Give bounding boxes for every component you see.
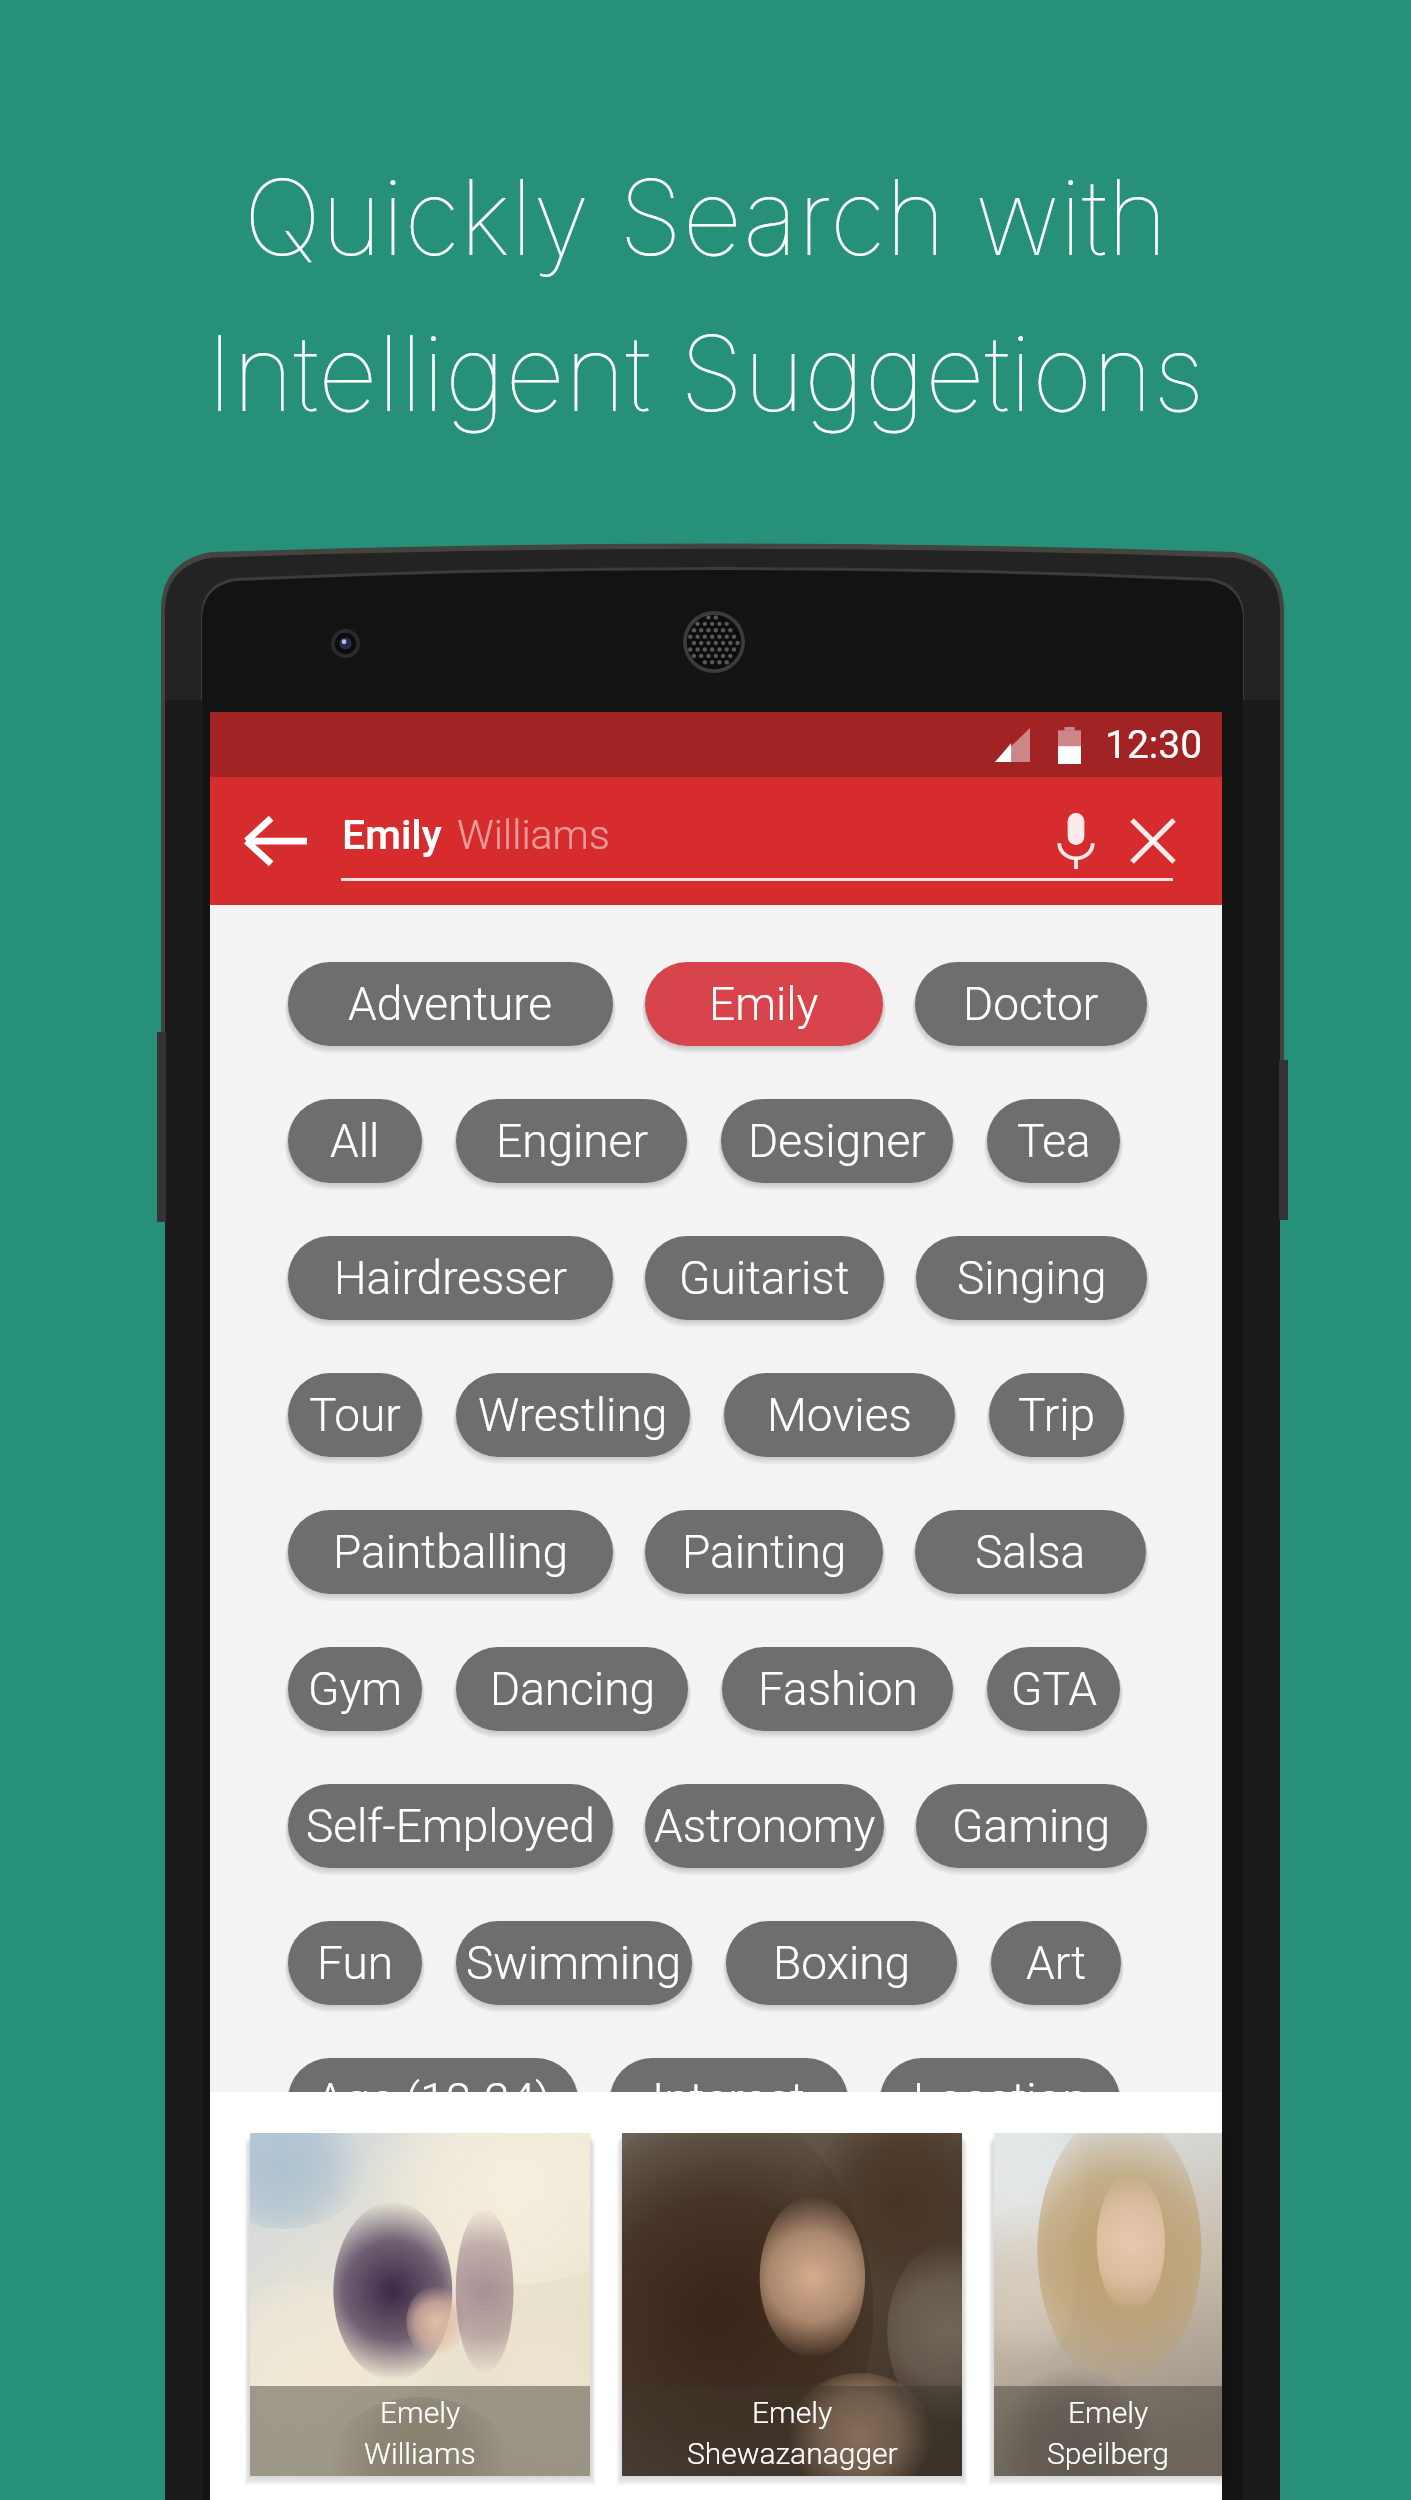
staticText: Williams: [457, 811, 610, 859]
button[interactable]: Doctor: [915, 962, 1147, 1046]
staticText: Speilberg: [1047, 2436, 1170, 2471]
staticText: Fashion: [758, 1662, 918, 1716]
staticText: Emily: [709, 977, 819, 1031]
staticText: Boxing: [773, 1936, 911, 1990]
button[interactable]: Dancing: [456, 1647, 688, 1731]
button[interactable]: Enginer: [456, 1099, 687, 1183]
button[interactable]: Emely: [622, 2133, 962, 2476]
staticText: Art: [1026, 1936, 1087, 1990]
staticText: Astronomy: [654, 1799, 876, 1853]
button[interactable]: Tour: [288, 1373, 422, 1457]
button[interactable]: Emily: [645, 962, 883, 1046]
staticText: Movies: [767, 1388, 912, 1442]
staticText: Emely: [1068, 2395, 1149, 2430]
button[interactable]: Painting: [645, 1510, 883, 1594]
staticText: Wrestling: [478, 1388, 668, 1442]
button[interactable]: GTA: [987, 1647, 1120, 1731]
staticText: Swimming: [466, 1936, 682, 1990]
button[interactable]: Wrestling: [456, 1373, 690, 1457]
button[interactable]: Gym: [288, 1647, 422, 1731]
staticText: Emely: [752, 2395, 833, 2430]
button[interactable]: Guitarist: [645, 1236, 884, 1320]
staticText: Emily: [342, 811, 442, 859]
button[interactable]: Emely: [250, 2133, 590, 2476]
staticText: Trip: [1018, 1388, 1096, 1442]
button[interactable]: Age (18-24): [288, 2058, 578, 2142]
button[interactable]: Gaming: [916, 1784, 1147, 1868]
staticText: Enginer: [496, 1114, 648, 1168]
button[interactable]: Designer: [721, 1099, 953, 1183]
button[interactable]: Salsa: [915, 1510, 1146, 1594]
staticText: 12:30: [1105, 722, 1203, 768]
button[interactable]: All: [288, 1099, 422, 1183]
button[interactable]: Boxing: [726, 1921, 957, 2005]
button[interactable]: Voice search: [1036, 777, 1116, 905]
staticText: Emely: [380, 2395, 461, 2430]
staticText: Interest: [652, 2073, 806, 2127]
staticText: Paintballing: [333, 1525, 569, 1579]
button[interactable]: Adventure: [288, 962, 613, 1046]
staticText: GTA: [1011, 1662, 1097, 1716]
button[interactable]: Paintballing: [288, 1510, 613, 1594]
staticText: Adventure: [348, 977, 553, 1031]
button[interactable]: Hairdresser: [288, 1236, 613, 1320]
staticText: Painting: [682, 1525, 847, 1579]
staticText: Hairdresser: [334, 1251, 567, 1305]
staticText: All: [330, 1114, 380, 1168]
button[interactable]: Fun: [288, 1921, 422, 2005]
button[interactable]: Trip: [989, 1373, 1124, 1457]
button[interactable]: Back: [210, 777, 340, 905]
staticText: Singing: [957, 1251, 1107, 1305]
staticText: Doctor: [963, 977, 1099, 1031]
button[interactable]: Emely: [994, 2133, 1222, 2476]
button[interactable]: Tea: [987, 1099, 1120, 1183]
staticText: Quickly Search with: [0, 154, 1411, 280]
staticText: Age (18-24): [316, 2073, 551, 2127]
button[interactable]: Interest: [610, 2058, 848, 2142]
staticText: Designer: [748, 1114, 926, 1168]
staticText: Fun: [317, 1936, 393, 1990]
staticText: Williams: [364, 2436, 476, 2471]
staticText: Salsa: [975, 1525, 1086, 1579]
button[interactable]: Self-Employed: [288, 1784, 613, 1868]
staticText: Gaming: [952, 1799, 1111, 1853]
staticText: Shewazanagger: [687, 2436, 898, 2471]
staticText: Gym: [308, 1662, 403, 1716]
button[interactable]: Art: [991, 1921, 1121, 2005]
staticText: Tea: [1017, 1114, 1091, 1168]
button[interactable]: Swimming: [456, 1921, 692, 2005]
staticText: Intelligent Suggetions: [0, 310, 1411, 436]
button[interactable]: Clear search: [1113, 777, 1193, 905]
button[interactable]: Astronomy: [645, 1784, 884, 1868]
staticText: Tour: [309, 1388, 401, 1442]
staticText: Guitarist: [679, 1251, 850, 1305]
staticText: Self-Employed: [306, 1799, 595, 1853]
button[interactable]: Movies: [724, 1373, 955, 1457]
button[interactable]: Location: [880, 2058, 1120, 2142]
button[interactable]: Singing: [916, 1236, 1147, 1320]
button[interactable]: Fashion: [722, 1647, 953, 1731]
staticText: Location: [913, 2073, 1088, 2127]
staticText: Dancing: [490, 1662, 655, 1716]
